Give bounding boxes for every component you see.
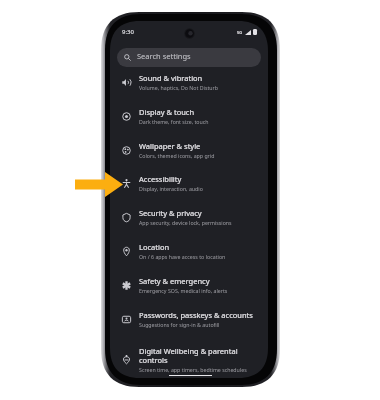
staticText: Digital Wellbeing & parental controls bbox=[139, 346, 238, 365]
staticText: Security & privacy bbox=[139, 208, 202, 218]
staticText: Colors, themed icons, app grid bbox=[139, 152, 215, 159]
staticText: Search settings bbox=[137, 51, 191, 61]
other: Pointer to Accessibility bbox=[75, 172, 123, 197]
button[interactable]: Security & privacy bbox=[110, 200, 268, 234]
staticText: Suggestions for sign-in & autofill bbox=[139, 321, 220, 328]
button[interactable]: Search settings bbox=[117, 48, 261, 67]
button[interactable]: Digital Wellbeing & parental controls bbox=[110, 338, 268, 378]
button[interactable]: Accessibility bbox=[110, 166, 268, 200]
button[interactable]: Location bbox=[110, 234, 268, 268]
staticText: On / 6 apps have access to location bbox=[139, 253, 226, 260]
button[interactable]: Passwords, passkeys & accounts bbox=[110, 302, 268, 336]
staticText: Wallpaper & style bbox=[139, 141, 201, 151]
staticText: Display & touch bbox=[139, 107, 195, 117]
staticText: Accessibility bbox=[139, 174, 182, 184]
staticText: Passwords, passkeys & accounts bbox=[139, 310, 253, 320]
staticText: Volume, haptics, Do Not Disturb bbox=[139, 84, 218, 91]
staticText: 5G bbox=[237, 30, 243, 35]
staticText: 9:30 bbox=[122, 28, 134, 36]
staticText: App security, device lock, permissions bbox=[139, 219, 232, 226]
staticText: Sound & vibration bbox=[139, 73, 203, 83]
staticText: Location bbox=[139, 242, 170, 252]
button[interactable]: Sound & vibration bbox=[110, 65, 268, 99]
staticText: Screen time, app timers, bedtime schedul… bbox=[139, 366, 247, 373]
staticText: Safety & emergency bbox=[139, 276, 210, 286]
button[interactable]: Display & touch bbox=[110, 99, 268, 133]
button[interactable]: Safety & emergency bbox=[110, 268, 268, 302]
staticText: Dark theme, font size, touch bbox=[139, 118, 209, 125]
button[interactable]: Wallpaper & style bbox=[110, 133, 268, 167]
staticText: Display, interaction, audio bbox=[139, 185, 203, 192]
staticText: Emergency SOS, medical info, alerts bbox=[139, 287, 228, 294]
